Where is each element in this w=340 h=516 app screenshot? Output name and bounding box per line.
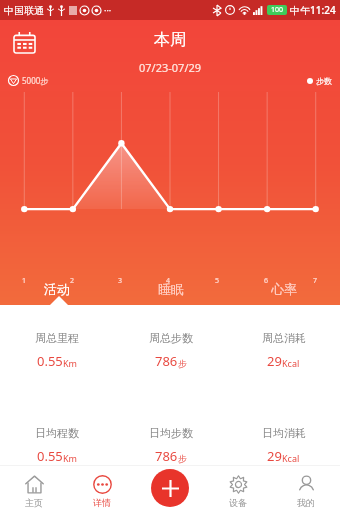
button[interactable]: 主页 (0, 466, 68, 516)
staticText: 2 (70, 276, 75, 286)
staticText: 本周 (154, 30, 186, 50)
button[interactable]: 周总步数 (114, 329, 227, 372)
staticText: 主页 (25, 497, 43, 508)
staticText: 6 (264, 276, 269, 286)
staticText: 5000步 (22, 75, 49, 86)
staticText: 5 (215, 276, 220, 286)
button[interactable]: Calendar (10, 28, 38, 56)
staticText: 中国联通 (4, 4, 44, 17)
button[interactable]: 我的 (272, 466, 340, 516)
staticText: 周总消耗 (262, 331, 306, 345)
staticText: 4 (166, 276, 171, 286)
button[interactable]: 详情 (68, 466, 136, 516)
staticText: 详情 (93, 497, 111, 508)
staticText: 周总里程 (35, 331, 79, 345)
staticText: ··· (104, 4, 112, 16)
staticText: 07/23-07/29 (139, 60, 202, 75)
staticText: 100 (271, 5, 284, 15)
staticText: 步 (178, 453, 187, 464)
button[interactable]: 心率 (227, 273, 340, 305)
button[interactable]: Add (151, 469, 189, 507)
staticText: 29 (267, 447, 282, 465)
staticText: 0.55 (37, 352, 63, 370)
button[interactable]: 设备 (204, 466, 272, 516)
button[interactable]: 活动 (0, 273, 114, 305)
staticText: 日均步数 (149, 426, 193, 440)
staticText: 日均消耗 (262, 426, 306, 440)
staticText: Kcal (282, 357, 300, 369)
staticText: 1 (22, 276, 27, 286)
staticText: 活动 (44, 281, 70, 297)
staticText: Kcal (282, 452, 300, 464)
staticText: 3 (118, 276, 123, 286)
staticText: 29 (267, 352, 282, 370)
button[interactable]: 日均消耗 (227, 424, 340, 467)
staticText: 设备 (229, 497, 247, 508)
staticText: 0.55 (37, 447, 63, 465)
staticText: 7 (313, 276, 318, 286)
staticText: 日均程数 (35, 426, 79, 440)
staticText: 我的 (297, 497, 315, 508)
staticText: 786 (155, 352, 178, 370)
button[interactable]: 日均程数 (0, 424, 114, 467)
staticText: Km (63, 452, 77, 464)
staticText: Km (63, 357, 77, 369)
staticText: 中午11:24 (290, 3, 336, 17)
staticText: 786 (155, 447, 178, 465)
staticText: 步数 (316, 76, 332, 86)
staticText: 心率 (271, 281, 297, 297)
button[interactable]: 睡眠 (114, 273, 227, 305)
staticText: 睡眠 (158, 281, 184, 297)
staticText: 周总步数 (149, 331, 193, 345)
button[interactable]: 日均步数 (114, 424, 227, 467)
button[interactable]: 周总消耗 (227, 329, 340, 372)
staticText: 步 (178, 358, 187, 369)
button[interactable]: 周总里程 (0, 329, 114, 372)
